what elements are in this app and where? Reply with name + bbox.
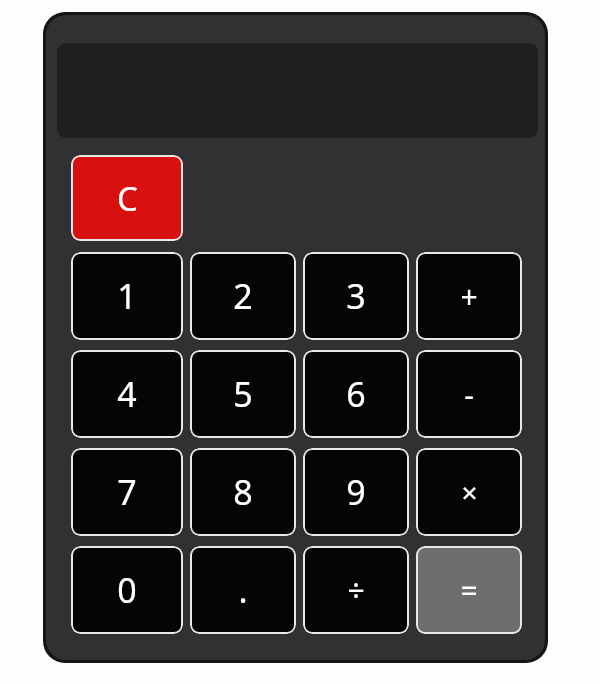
button[interactable]: Plus xyxy=(416,252,522,340)
staticText: 6 xyxy=(346,371,366,417)
button[interactable]: 2 xyxy=(190,252,296,340)
staticText: 4 xyxy=(117,371,137,417)
button[interactable]: 9 xyxy=(303,448,409,536)
staticText: 3 xyxy=(346,273,366,319)
button[interactable]: 6 xyxy=(303,350,409,438)
staticText: C xyxy=(117,176,138,221)
button[interactable]: 8 xyxy=(190,448,296,536)
button[interactable]: 1 xyxy=(71,252,183,340)
button[interactable]: Minus xyxy=(416,350,522,438)
staticText: = xyxy=(460,570,478,611)
button[interactable]: C xyxy=(71,155,183,241)
staticText: 9 xyxy=(346,469,366,515)
staticText: 0 xyxy=(117,567,137,613)
staticText: - xyxy=(464,374,474,415)
button[interactable]: 4 xyxy=(71,350,183,438)
button[interactable]: Multiply xyxy=(416,448,522,536)
staticText: × xyxy=(461,473,478,511)
staticText: 7 xyxy=(117,469,137,515)
staticText: . xyxy=(238,567,248,613)
staticText: ÷ xyxy=(347,570,365,611)
staticText: 1 xyxy=(117,273,137,319)
button[interactable]: 0 xyxy=(71,546,183,634)
button[interactable]: Equals xyxy=(416,546,522,634)
staticText: 2 xyxy=(233,273,253,319)
button[interactable]: Divide xyxy=(303,546,409,634)
button[interactable]: 5 xyxy=(190,350,296,438)
staticText: 8 xyxy=(233,469,253,515)
button[interactable]: 3 xyxy=(303,252,409,340)
button[interactable]: Decimal point xyxy=(190,546,296,634)
staticText: + xyxy=(460,276,478,317)
staticText: 5 xyxy=(233,371,253,417)
button[interactable]: 7 xyxy=(71,448,183,536)
